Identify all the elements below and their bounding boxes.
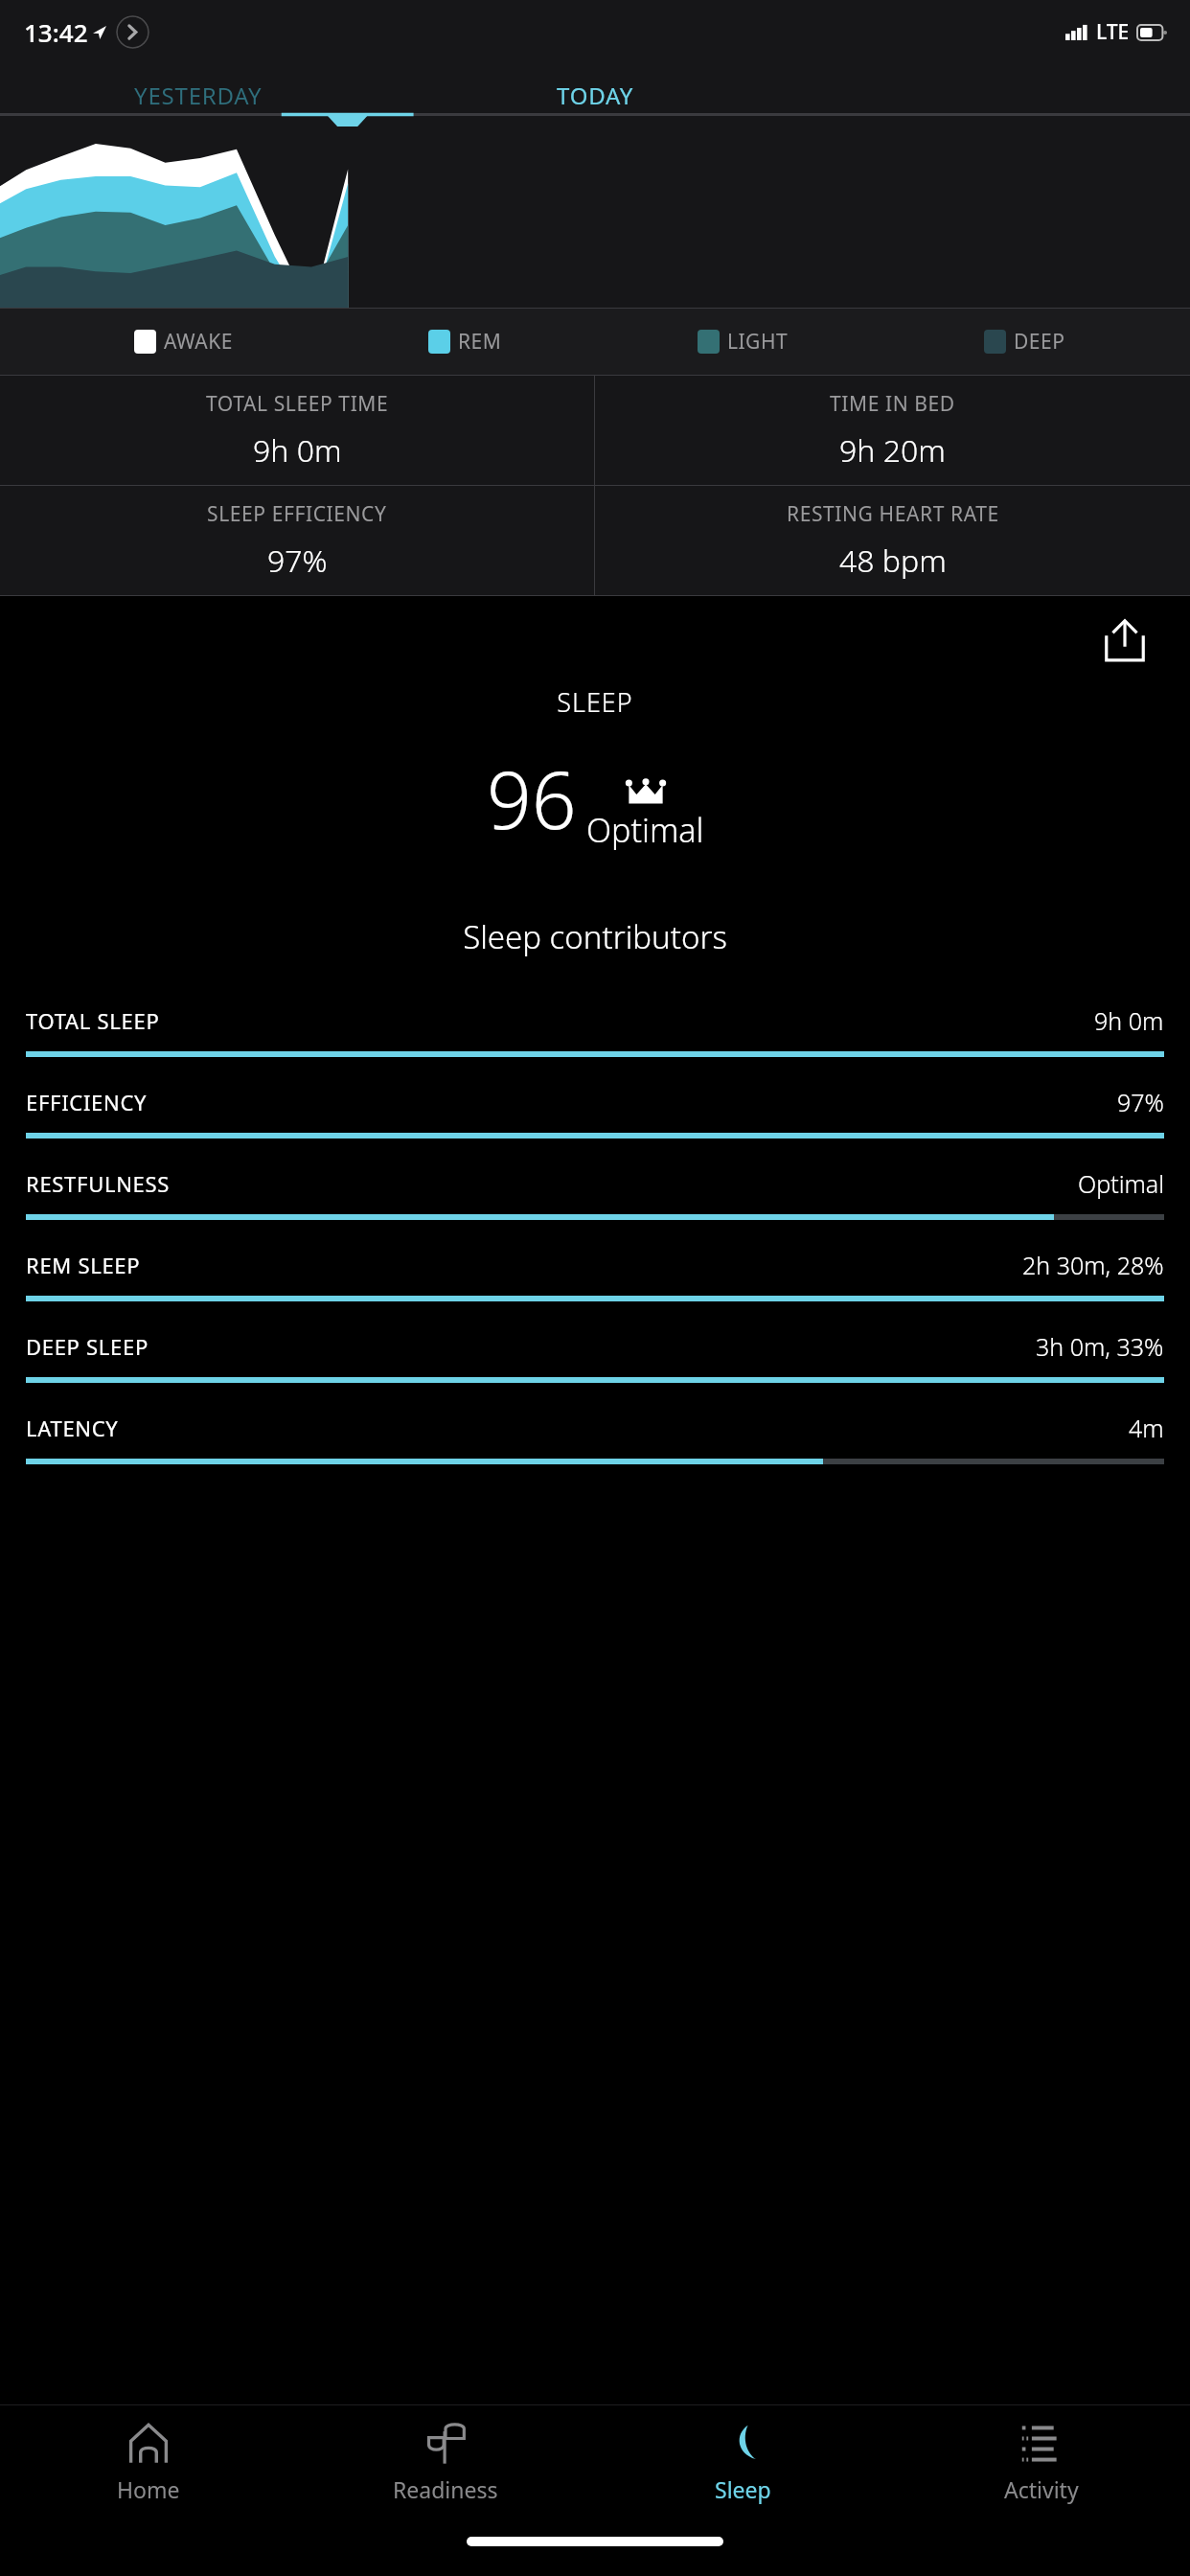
button[interactable]: Share [1100,615,1150,665]
button[interactable]: SLEEP EFFICIENCY [0,486,594,595]
staticText: RESTFULNESS [26,1169,171,1198]
button[interactable]: Home [0,2405,297,2520]
button[interactable]: RESTFULNESS [0,1167,1190,1249]
staticText: 96 [487,745,577,852]
button[interactable]: TOTAL SLEEP TIME [0,376,594,485]
button[interactable]: EFFICIENCY [0,1086,1190,1167]
staticText: 97% [267,540,328,582]
staticText: EFFICIENCY [26,1088,148,1116]
staticText: AWAKE [164,328,233,356]
staticText: DEEP [1014,328,1065,356]
staticText: TOTAL SLEEP [26,1006,160,1035]
staticText: 13:42 [24,15,88,49]
button[interactable]: LATENCY [0,1412,1190,1493]
staticText: Sleep contributors [0,915,1190,958]
staticText: 9h 0m [1094,1004,1164,1037]
staticText: 9h 20m [839,429,946,471]
staticText: Activity [1004,2474,1079,2504]
staticText: TOTAL SLEEP TIME [206,390,389,418]
staticText: Readiness [393,2474,498,2504]
staticText: LATENCY [26,1414,119,1442]
button[interactable]: Readiness [297,2405,594,2520]
staticText: Home [117,2474,180,2504]
staticText: Optimal [586,808,704,852]
staticText: 48 bpm [839,540,947,582]
staticText: YESTERDAY [134,80,263,111]
staticText: 4m [1129,1412,1164,1444]
button[interactable]: TODAY [397,64,793,126]
staticText: 9h 0m [253,429,342,471]
button[interactable]: DEEP SLEEP [0,1330,1190,1412]
staticText: REM [458,328,502,356]
button[interactable]: Activity [892,2405,1190,2520]
staticText: Sleep [715,2474,771,2504]
staticText: LIGHT [727,328,789,356]
staticText: RESTING HEART RATE [787,500,999,528]
staticText: SLEEP EFFICIENCY [207,500,387,528]
staticText: TODAY [557,80,634,111]
staticText: TIME IN BED [830,390,955,418]
button[interactable]: TIME IN BED [595,376,1190,485]
staticText: REM SLEEP [26,1251,141,1279]
staticText: Optimal [1078,1167,1164,1200]
button[interactable]: REM SLEEP [0,1249,1190,1330]
button[interactable]: Sleep [594,2405,892,2520]
staticText: LTE [1096,18,1130,46]
staticText: 97% [1117,1086,1164,1118]
staticText: DEEP SLEEP [26,1332,149,1361]
staticText: 2h 30m, 28% [1022,1249,1164,1281]
staticText: SLEEP [0,684,1190,720]
button[interactable]: Forward [116,15,149,49]
button[interactable]: RESTING HEART RATE [595,486,1190,595]
button[interactable]: YESTERDAY [0,64,397,126]
staticText: 3h 0m, 33% [1036,1330,1164,1363]
button[interactable]: TOTAL SLEEP [0,1004,1190,1086]
